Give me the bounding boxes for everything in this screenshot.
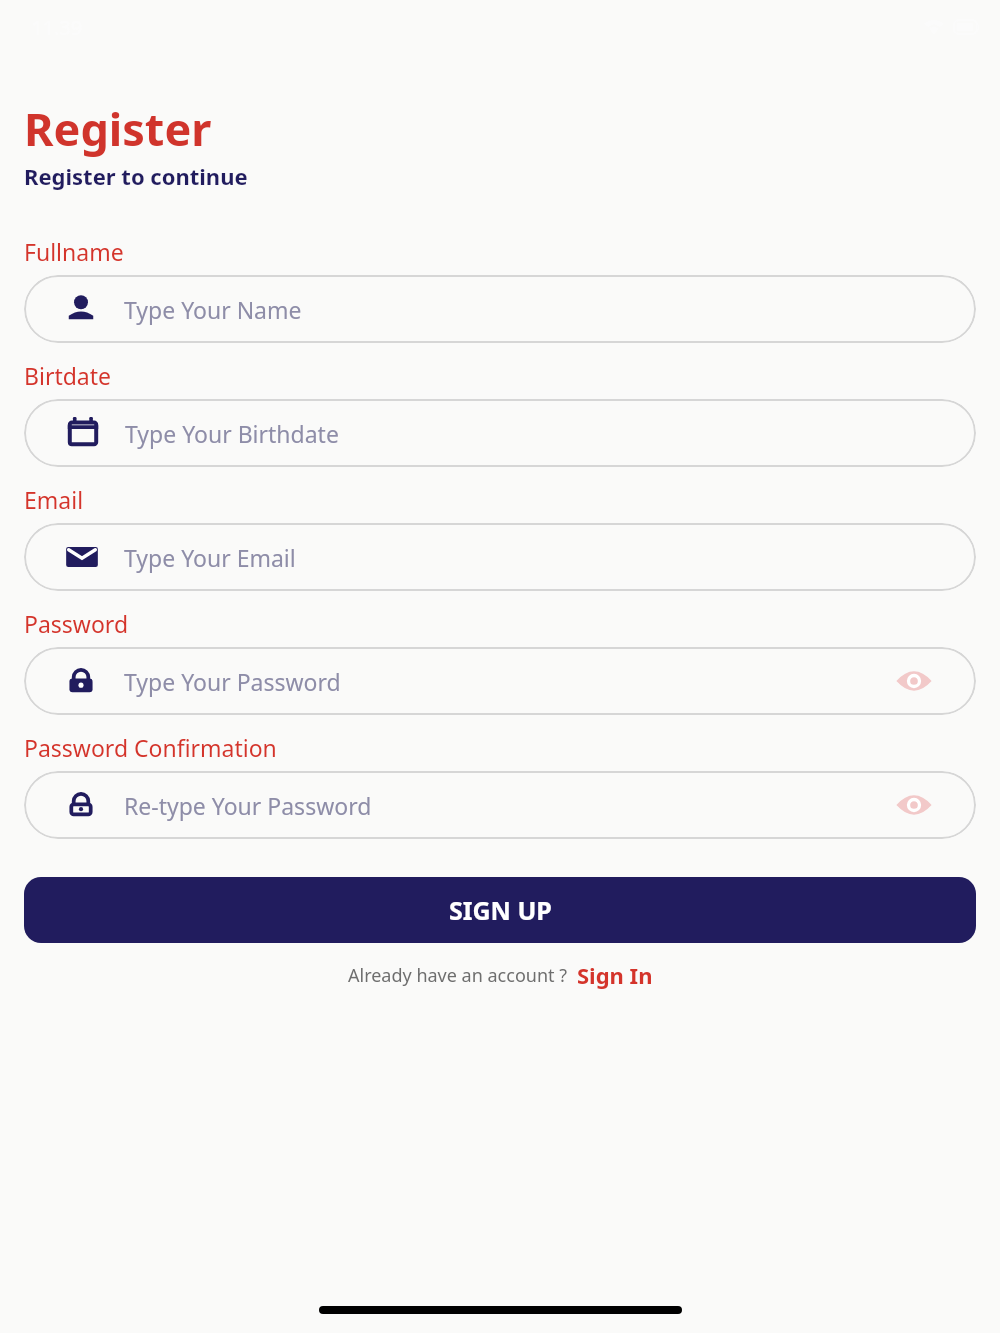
button[interactable]: Type Your Email [24,523,976,591]
staticText: Type Your Name [124,294,302,325]
button[interactable]: SIGN UP [24,877,976,943]
button[interactable]: Type Your Password [24,647,976,715]
button[interactable]: Re-type Your Password [24,771,976,839]
button[interactable]: Show password [892,783,936,827]
button[interactable]: Type Your Name [24,275,976,343]
staticText: Birtdate [24,360,112,391]
button[interactable]: Sign In [577,960,653,990]
staticText: Type Your Birthdate [125,418,339,449]
button[interactable]: Show password [892,659,936,703]
staticText: Type Your Password [124,666,341,697]
staticText: Fullname [24,236,124,267]
staticText: Register [24,98,212,159]
staticText: Email [24,484,84,515]
staticText: Password [24,608,129,639]
staticText: Sign In [577,960,653,990]
staticText: SIGN UP [449,893,552,927]
staticText: Type Your Email [124,542,296,573]
staticText: Already have an account ? [348,963,568,988]
staticText: Register to continue [24,161,248,191]
button[interactable]: Type Your Birthdate [24,399,976,467]
staticText: Password Confirmation [24,732,277,763]
staticText: Re-type Your Password [124,790,372,821]
